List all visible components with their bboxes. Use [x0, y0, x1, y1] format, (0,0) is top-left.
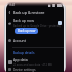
staticText: Account — [13, 38, 26, 43]
button[interactable]: Back — [6, 8, 64, 16]
button[interactable]: Backup details — [13, 51, 35, 55]
staticText: 9:41 — [9, 3, 16, 7]
staticText: 22 apps and app data · 412 MB — [13, 63, 52, 66]
staticText: Backed up to Google Drive · yesterday — [13, 24, 61, 28]
button[interactable]: App data — [6, 57, 64, 66]
staticText: Device settings — [13, 68, 36, 72]
button[interactable]: Account — [6, 37, 64, 44]
staticText: Back up now — [13, 18, 34, 23]
button[interactable]: Back up now — [6, 18, 64, 28]
other: Back — [6, 9, 13, 16]
staticText: Back up now — [18, 29, 36, 33]
button[interactable]: Device settings — [6, 66, 64, 72]
staticText: Backup details — [13, 51, 35, 55]
staticText: Back up & restore — [13, 10, 45, 15]
button[interactable]: Back up now — [15, 28, 38, 34]
staticText: App data — [13, 57, 28, 62]
